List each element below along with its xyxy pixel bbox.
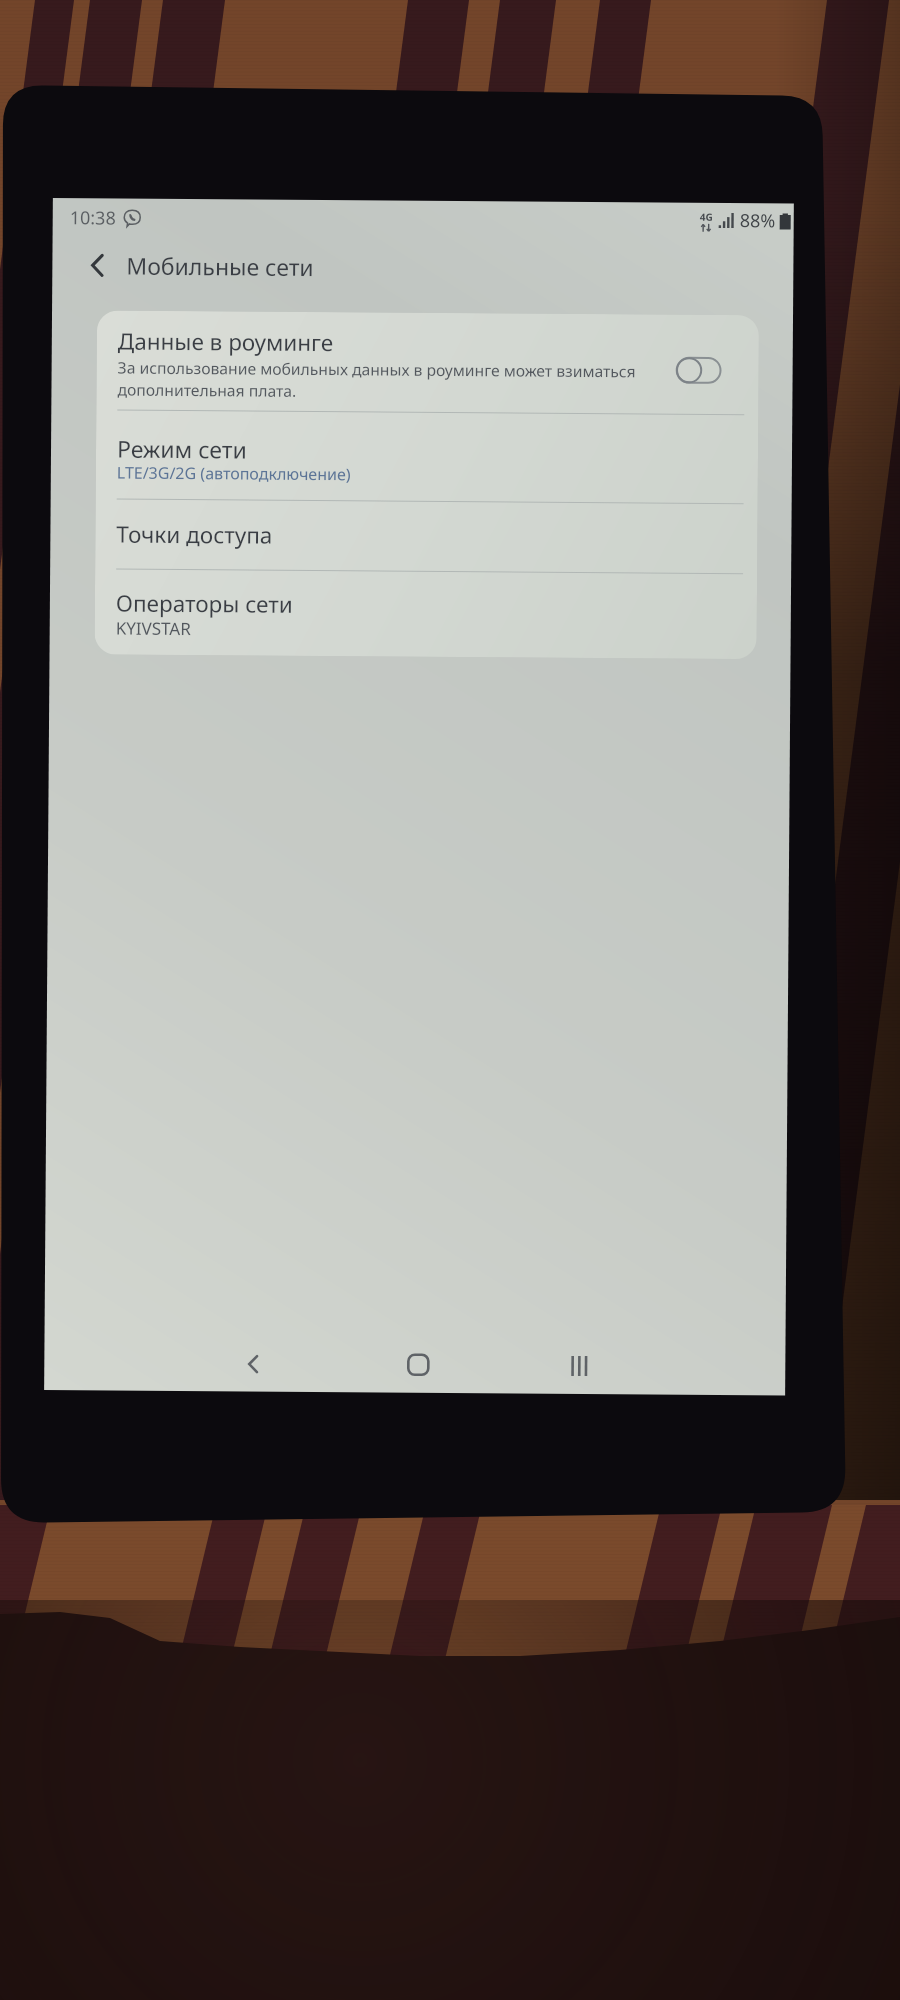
staticText: Данные в роуминге <box>118 325 334 358</box>
staticText: дополнительная плата. <box>117 378 296 401</box>
staticText: Точки доступа <box>116 518 272 551</box>
button[interactable]: Back <box>73 241 122 290</box>
staticText: Операторы сети <box>116 587 293 620</box>
staticText: Режим сети <box>117 432 247 464</box>
staticText: За использование мобильных данных в роум… <box>118 356 636 381</box>
staticText: 10:38 <box>70 205 117 230</box>
button[interactable]: Data roaming toggle <box>675 357 722 384</box>
button[interactable]: Операторы сети <box>94 569 757 659</box>
staticText: 4G <box>700 210 713 224</box>
button[interactable]: Данные в роуминге <box>96 310 759 414</box>
staticText: 88% <box>740 208 776 233</box>
staticText: LTE/3G/2G (автоподключение) <box>117 461 351 485</box>
button[interactable]: Режим сети <box>96 410 758 503</box>
button[interactable]: Точки доступа <box>95 499 758 574</box>
button[interactable]: Back <box>226 1337 278 1390</box>
button[interactable]: Home <box>392 1339 444 1391</box>
staticText: KYIVSTAR <box>116 616 192 640</box>
staticText: Мобильные сети <box>126 250 314 282</box>
button[interactable]: Recent apps <box>553 1340 605 1392</box>
